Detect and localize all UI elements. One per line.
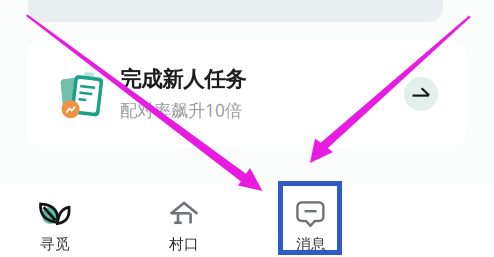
staticText: 完成新人任务 [120, 66, 246, 93]
staticText: 消息 [296, 235, 326, 253]
staticText: 寻觅 [40, 235, 70, 253]
button[interactable]: 寻觅 [13, 200, 97, 253]
button[interactable]: 村口 [142, 200, 226, 253]
staticText: 配对率飙升10倍 [120, 99, 242, 122]
button[interactable]: 完成新人任务 [27, 40, 467, 148]
button[interactable]: 消息 [269, 200, 353, 253]
staticText: 村口 [169, 235, 199, 253]
